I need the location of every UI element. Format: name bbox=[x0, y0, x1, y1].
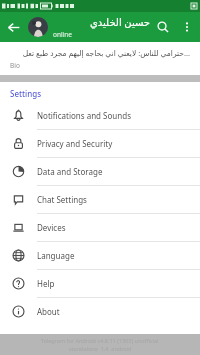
staticText: Bio bbox=[10, 61, 20, 70]
button[interactable]: Search bbox=[150, 14, 176, 40]
button[interactable]: Back bbox=[0, 14, 26, 40]
staticText: Settings bbox=[10, 88, 42, 99]
staticText: standalone 1.4 android bbox=[69, 345, 132, 352]
button[interactable]: Notifications and Sounds bbox=[0, 102, 200, 130]
button[interactable]: Devices bbox=[0, 214, 200, 242]
button[interactable]: Privacy and Security bbox=[0, 130, 200, 158]
staticText: online bbox=[53, 30, 72, 39]
staticText: Language bbox=[37, 250, 75, 261]
button[interactable]: More options bbox=[176, 16, 198, 38]
button[interactable]: Chat Settings bbox=[0, 186, 200, 214]
button[interactable]: Help bbox=[0, 270, 200, 298]
staticText: Notifications and Sounds bbox=[37, 110, 131, 121]
button[interactable]: حترامي للناس: لايعني اني بحاجه إليهم مجر… bbox=[0, 42, 200, 75]
staticText: Devices bbox=[37, 222, 66, 233]
button[interactable]: Data and Storage bbox=[0, 158, 200, 186]
staticText: حترامي للناس: لايعني اني بحاجه إليهم مجر… bbox=[10, 48, 190, 58]
staticText: Data and Storage bbox=[37, 166, 103, 177]
staticText: Chat Settings bbox=[37, 194, 87, 205]
staticText: Telegram for Android v4.8.11 (1303) unof… bbox=[41, 337, 159, 344]
button[interactable]: About bbox=[0, 298, 200, 325]
button[interactable]: Language bbox=[0, 242, 200, 270]
staticText: Privacy and Security bbox=[37, 138, 113, 149]
staticText: About bbox=[37, 306, 60, 317]
staticText: حسين الخليدي bbox=[53, 15, 150, 29]
staticText: Help bbox=[37, 278, 55, 289]
